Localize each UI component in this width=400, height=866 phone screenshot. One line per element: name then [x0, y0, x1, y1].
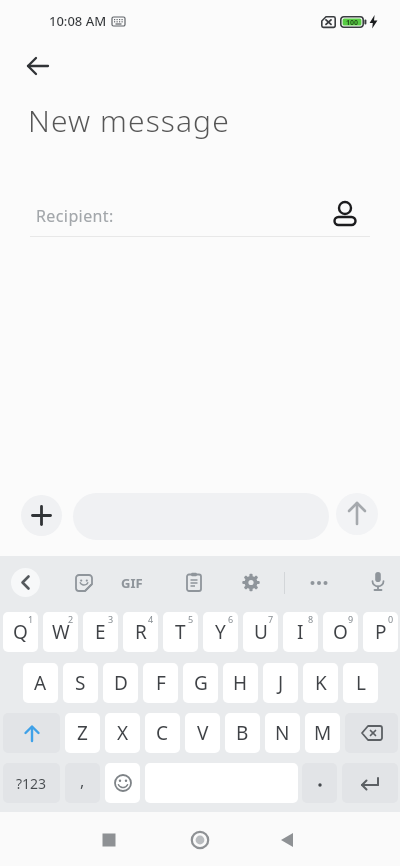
staticText: G [194, 670, 208, 696]
button[interactable] [21, 495, 62, 536]
staticText: Z [77, 720, 88, 746]
staticText: K [315, 670, 327, 696]
staticText: Y [215, 619, 226, 645]
staticText: T [175, 619, 186, 645]
button[interactable]: N [265, 713, 300, 753]
staticText: J [278, 670, 284, 696]
button[interactable]: G [183, 663, 218, 703]
button[interactable]: L [343, 663, 378, 703]
button[interactable]: W [43, 612, 78, 652]
staticText: O [333, 619, 348, 645]
button[interactable]: Q [3, 612, 38, 652]
button[interactable]: J [263, 663, 298, 703]
button[interactable]: Recipient: [28, 195, 372, 237]
staticText: N [275, 720, 290, 746]
staticText: 6 [228, 613, 234, 625]
button[interactable] [302, 763, 337, 803]
button[interactable] [342, 763, 398, 803]
staticText: B [236, 720, 249, 746]
staticText: S [75, 670, 86, 696]
staticText: 4 [148, 613, 154, 625]
button[interactable]: GIF [120, 573, 150, 593]
staticText: A [34, 670, 47, 696]
button[interactable]: Y [203, 612, 238, 652]
staticText: , [80, 770, 85, 792]
staticText: 9 [348, 613, 354, 625]
button[interactable]: I [283, 612, 318, 652]
button[interactable] [73, 572, 95, 594]
staticText: 10:08 AM [49, 12, 107, 30]
button[interactable] [96, 827, 122, 853]
button[interactable]: U [243, 612, 278, 652]
button[interactable] [274, 827, 300, 853]
button[interactable]: O [323, 612, 358, 652]
staticText: D [114, 670, 128, 696]
button[interactable] [367, 570, 389, 592]
button[interactable] [336, 493, 378, 535]
button[interactable]: Z [65, 713, 100, 753]
staticText: L [356, 670, 366, 696]
button[interactable] [22, 51, 52, 81]
staticText: 100 [346, 18, 359, 28]
staticText: 5 [188, 613, 194, 625]
staticText: New message [28, 100, 230, 141]
staticText: W [52, 619, 70, 645]
button[interactable]: X [105, 713, 140, 753]
staticText: P [375, 619, 387, 645]
button[interactable]: F [143, 663, 178, 703]
button[interactable]: A [23, 663, 58, 703]
button[interactable]: E [83, 612, 118, 652]
button[interactable]: H [223, 663, 258, 703]
button[interactable]: ?123 [3, 763, 60, 803]
button[interactable] [3, 713, 60, 753]
button[interactable] [308, 573, 334, 593]
staticText: 0 [388, 613, 394, 625]
button[interactable]: B [225, 713, 260, 753]
button[interactable] [345, 713, 398, 753]
button[interactable]: T [163, 612, 198, 652]
staticText: Q [13, 619, 28, 645]
button[interactable] [105, 763, 140, 803]
staticText: C [156, 720, 169, 746]
staticText: R [135, 619, 147, 645]
button[interactable]: M [305, 713, 340, 753]
staticText: GIF [121, 574, 143, 592]
staticText: X [117, 720, 129, 746]
button[interactable]: K [303, 663, 338, 703]
staticText: M [314, 720, 332, 746]
staticText: 7 [268, 613, 274, 625]
button[interactable] [183, 571, 205, 593]
button[interactable]: S [63, 663, 98, 703]
button[interactable] [11, 568, 40, 597]
button[interactable] [330, 198, 360, 228]
button[interactable]: P [363, 612, 398, 652]
staticText: V [197, 720, 209, 746]
staticText: 1 [28, 613, 34, 625]
staticText: 8 [308, 613, 314, 625]
button[interactable] [187, 827, 213, 853]
button[interactable]: C [145, 713, 180, 753]
staticText: 2 [68, 613, 74, 625]
staticText: H [233, 670, 248, 696]
button[interactable]: R [123, 612, 158, 652]
button[interactable]: , [65, 763, 100, 803]
staticText: U [254, 619, 268, 645]
staticText: 3 [108, 613, 114, 625]
staticText: Recipient: [36, 205, 114, 227]
button[interactable]: D [103, 663, 138, 703]
staticText: E [95, 619, 106, 645]
staticText: F [156, 670, 166, 696]
button[interactable] [240, 571, 262, 593]
staticText: ?123 [16, 774, 47, 793]
staticText: I [297, 619, 304, 645]
button[interactable]: V [185, 713, 220, 753]
